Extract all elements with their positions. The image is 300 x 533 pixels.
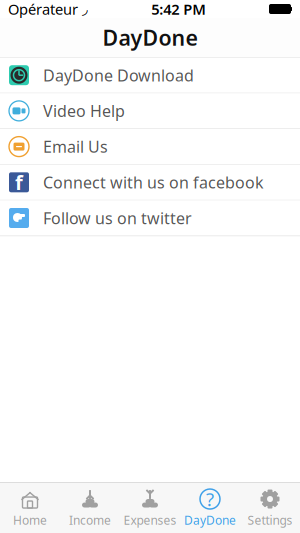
staticText: DayDone	[184, 512, 236, 528]
button[interactable]: Email Us	[0, 129, 300, 165]
staticText: f	[15, 169, 23, 196]
staticText: Follow us on twitter	[43, 207, 192, 229]
staticText: Connect with us on facebook	[43, 172, 264, 193]
button[interactable]: Video Help	[0, 93, 300, 129]
button[interactable]: Home	[0, 484, 60, 532]
button[interactable]: Follow us on twitter	[0, 200, 300, 236]
button[interactable]: DayDone	[180, 484, 240, 532]
staticText: DayDone	[102, 23, 197, 52]
button[interactable]: Income	[60, 484, 120, 532]
button[interactable]: DayDone Download	[0, 58, 300, 93]
button[interactable]: Settings	[240, 484, 300, 532]
staticText: DayDone Download	[43, 65, 194, 86]
staticText: Income	[69, 512, 111, 528]
button[interactable]: f	[0, 165, 300, 200]
staticText: Email Us	[43, 136, 108, 157]
staticText: Settings	[247, 512, 292, 528]
staticText: Video Help	[43, 100, 125, 121]
staticText: Opérateur	[8, 0, 78, 19]
staticText: ◞	[82, 1, 88, 17]
button[interactable]: Expenses	[120, 484, 180, 532]
staticText: 5:42 PM	[151, 0, 206, 19]
staticText: ?	[206, 487, 214, 511]
staticText: Home	[13, 512, 47, 528]
staticText: Expenses	[123, 512, 176, 528]
